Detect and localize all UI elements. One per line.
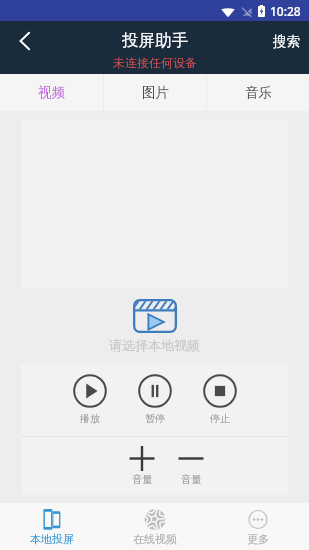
staticText: 停止 — [210, 412, 230, 425]
button[interactable]: 播放 — [68, 374, 112, 425]
button[interactable]: 搜索 — [273, 21, 300, 61]
button[interactable]: 图片 — [104, 74, 206, 111]
staticText: 投屏助手 — [122, 30, 188, 51]
staticText: 音量 — [181, 473, 202, 486]
button[interactable]: 在线视频 — [103, 503, 206, 550]
staticText: 视频 — [38, 84, 65, 101]
button[interactable]: 音乐 — [207, 74, 309, 111]
staticText: 更多 — [247, 532, 269, 546]
button[interactable]: Volume up — [121, 446, 163, 486]
button[interactable]: 请选择本地视频 — [109, 299, 200, 353]
button[interactable]: 本地投屏 — [0, 503, 103, 550]
staticText: 音量 — [132, 473, 153, 486]
button[interactable]: Volume down — [170, 446, 212, 486]
staticText: 图片 — [142, 84, 169, 101]
button[interactable]: 停止 — [198, 374, 242, 425]
staticText: 本地投屏 — [30, 532, 74, 546]
staticText: 请选择本地视频 — [109, 337, 200, 353]
staticText: 10:28 — [270, 3, 301, 19]
button[interactable]: 更多 — [206, 503, 309, 550]
staticText: 播放 — [80, 412, 100, 425]
staticText: 未连接任何设备 — [113, 55, 197, 70]
button[interactable]: 暂停 — [133, 374, 177, 425]
staticText: 在线视频 — [133, 532, 177, 546]
staticText: 音乐 — [245, 84, 272, 101]
button[interactable]: 视频 — [0, 74, 103, 111]
staticText: 搜索 — [273, 33, 300, 50]
staticText: 暂停 — [145, 412, 165, 425]
button[interactable]: Back — [0, 21, 48, 61]
